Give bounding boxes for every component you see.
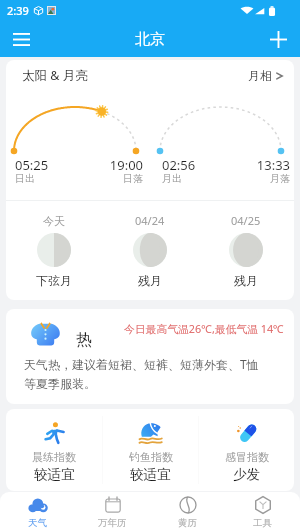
staticText: 月相 — [248, 68, 272, 83]
button[interactable]: Menu — [9, 27, 33, 51]
button[interactable]: 工具 — [225, 492, 300, 531]
staticText: 太阳 & 月亮 — [22, 67, 88, 84]
staticText: 今日最高气温26℃,最低气温 14℃ — [124, 321, 284, 336]
staticText: 02:56 — [162, 156, 226, 174]
staticText: 日落 — [79, 172, 143, 185]
staticText: 今天 — [43, 214, 65, 228]
staticText: 残月 — [234, 273, 258, 288]
staticText: 较适宜 — [34, 466, 75, 483]
button[interactable]: 钓鱼指数 — [103, 409, 198, 491]
staticText: 天气 — [28, 517, 47, 529]
button[interactable]: 04/25 — [198, 201, 294, 300]
button[interactable]: Add city — [266, 27, 290, 51]
staticText: 04/24 — [135, 213, 165, 228]
staticText: 残月 — [138, 273, 162, 288]
staticText: 热 — [76, 330, 92, 350]
button[interactable]: 04/24 — [102, 201, 198, 300]
staticText: 感冒指数 — [225, 450, 269, 464]
staticText: 晨练指数 — [32, 450, 76, 464]
staticText: 月出 — [162, 172, 226, 185]
staticText: 北京 — [135, 30, 165, 49]
staticText: 少发 — [233, 466, 260, 483]
staticText: 工具 — [253, 517, 272, 529]
staticText: 月落 — [226, 172, 290, 185]
staticText: 04/25 — [231, 213, 261, 228]
staticText: 黄历 — [178, 517, 197, 529]
button[interactable]: 天气 — [0, 492, 75, 531]
staticText: 05:25 — [15, 156, 79, 174]
button[interactable]: 感冒指数 — [199, 409, 294, 491]
button[interactable]: 黄历 — [150, 492, 225, 531]
staticText: 日出 — [15, 172, 79, 185]
button[interactable]: 晨练指数 — [6, 409, 102, 491]
staticText: 13:33 — [226, 156, 290, 174]
staticText: 万年历 — [98, 517, 127, 529]
button[interactable]: 月相 — [248, 68, 284, 83]
staticText: 2:39 — [7, 3, 29, 18]
staticText: 19:00 — [79, 156, 143, 174]
staticText: 下弦月 — [36, 273, 72, 288]
staticText: 天气热，建议着短裙、短裤、短薄外套、T恤等夏季服装。 — [24, 356, 260, 392]
staticText: 钓鱼指数 — [129, 450, 173, 464]
staticText: 较适宜 — [130, 466, 171, 483]
button[interactable]: 万年历 — [75, 492, 150, 531]
button[interactable]: 今天 — [6, 201, 102, 300]
